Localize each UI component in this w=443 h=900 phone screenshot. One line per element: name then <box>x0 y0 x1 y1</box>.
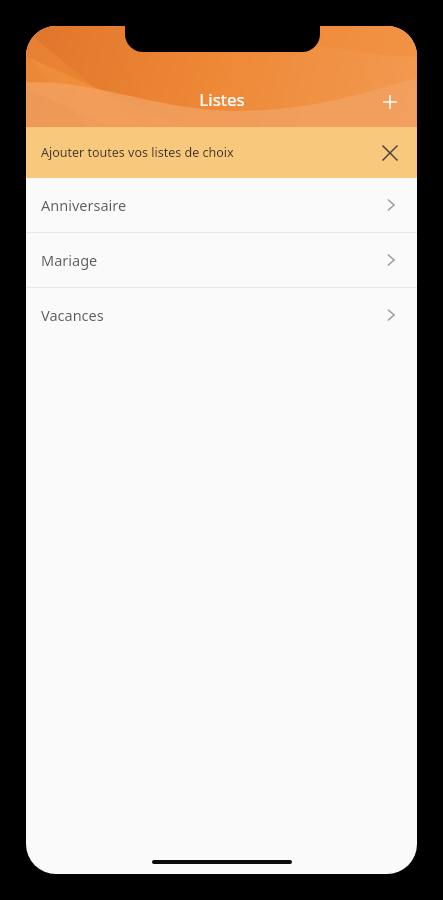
staticText: Ajouter toutes vos listes de choix <box>41 144 371 161</box>
staticText: Mariage <box>41 250 379 270</box>
button[interactable]: Fermer <box>371 134 409 172</box>
button[interactable]: Mariage <box>26 233 417 287</box>
staticText: Anniversaire <box>41 195 379 215</box>
staticText: Listes <box>199 88 245 111</box>
button[interactable]: Anniversaire <box>26 178 417 232</box>
button[interactable]: Vacances <box>26 288 417 342</box>
staticText: Vacances <box>41 305 379 325</box>
button[interactable]: Ajouter toutes vos listes de choix <box>26 127 417 178</box>
button[interactable]: Ajouter une liste <box>371 83 409 121</box>
